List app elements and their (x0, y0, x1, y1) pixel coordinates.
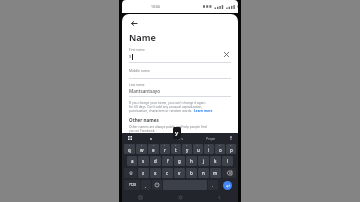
staticText: for 60 days. Don't add any unusual capit… (129, 105, 203, 109)
staticText: Name (129, 31, 156, 43)
staticText: 10:04 (151, 4, 160, 9)
staticText: r (164, 147, 166, 153)
staticText: o (219, 147, 222, 153)
staticText: First name (129, 48, 145, 52)
button[interactable]: Ps (166, 133, 196, 143)
staticText: b (190, 170, 193, 176)
button[interactable]: Last name (129, 83, 231, 97)
staticText: Mantsantsayo (129, 88, 161, 94)
button[interactable]: 3 (148, 144, 159, 154)
staticText: Prqm (206, 136, 216, 141)
staticText: Learn more (194, 109, 213, 113)
button[interactable]: Learn more (194, 109, 213, 113)
button[interactable]: g (174, 156, 185, 166)
staticText: punctuation, characters or random words. (129, 109, 194, 113)
button[interactable]: Back (129, 18, 139, 28)
staticText: e (152, 147, 155, 153)
staticText: 4 (164, 144, 166, 147)
staticText: v (178, 170, 181, 176)
staticText: k (214, 158, 217, 164)
staticText: Ps (179, 136, 183, 141)
staticText: z (142, 170, 145, 176)
staticText: q (128, 147, 131, 153)
button[interactable]: n (198, 168, 209, 178)
button[interactable]: m (210, 168, 221, 178)
staticText: Middle name (129, 68, 150, 73)
staticText: n (202, 170, 205, 176)
button[interactable]: v (174, 168, 185, 178)
staticText: 7 (197, 144, 199, 147)
staticText: y (186, 147, 189, 153)
staticText: s (142, 158, 145, 164)
button[interactable]: z (138, 168, 149, 178)
button[interactable]: 6 (182, 144, 192, 154)
button[interactable]: Emoji (152, 180, 162, 190)
button[interactable]: , (141, 180, 151, 190)
button[interactable]: Middle name (129, 68, 231, 79)
button[interactable]: Clipboard (124, 133, 136, 143)
staticText: m (213, 170, 218, 176)
staticText: , (145, 183, 147, 188)
button[interactable]: 4 (160, 144, 170, 154)
button[interactable]: b (186, 168, 197, 178)
staticText: p (230, 147, 233, 153)
button[interactable]: Home (176, 193, 185, 202)
staticText: f (167, 158, 169, 164)
button[interactable]: d (150, 156, 161, 166)
button[interactable]: a (127, 156, 137, 166)
button[interactable]: Voice input (226, 133, 236, 143)
button[interactable]: s (136, 133, 166, 143)
button[interactable]: 9 (215, 144, 225, 154)
staticText: t (175, 147, 177, 153)
button[interactable]: l (222, 156, 233, 166)
staticText: a (131, 158, 134, 164)
staticText: w (140, 147, 144, 153)
staticText: 2 (141, 144, 143, 147)
button[interactable]: s (138, 156, 149, 166)
button[interactable]: x (150, 168, 161, 178)
staticText: 8 (208, 144, 210, 147)
staticText: you on Facebook. (129, 129, 156, 133)
button[interactable]: c (162, 168, 173, 178)
staticText: . (212, 183, 214, 188)
button[interactable]: Enter (223, 181, 232, 190)
button[interactable]: First name (129, 48, 231, 60)
button[interactable]: j (198, 156, 209, 166)
staticText: s (150, 136, 152, 141)
staticText: Last name (129, 83, 145, 87)
staticText: s (129, 53, 132, 60)
staticText: u (197, 147, 200, 153)
staticText: 5 (175, 144, 177, 147)
staticText: i (208, 147, 210, 153)
button[interactable]: Backspace (222, 168, 236, 178)
staticText: Other names are always public and help p… (129, 125, 207, 129)
staticText: l (227, 158, 229, 164)
staticText: Other names (129, 117, 159, 123)
button[interactable]: 0 (226, 144, 236, 154)
button[interactable]: Clear first name (222, 50, 231, 59)
staticText: h (190, 158, 193, 164)
staticText: x (154, 170, 157, 176)
staticText: y (175, 129, 179, 137)
button[interactable]: ?123 (124, 180, 140, 190)
staticText: 3 (153, 144, 155, 147)
button[interactable]: . (208, 180, 218, 190)
button[interactable]: 8 (204, 144, 214, 154)
button[interactable]: k (210, 156, 221, 166)
button[interactable]: f (162, 156, 173, 166)
button[interactable]: 1 (124, 144, 135, 154)
staticText: j (203, 158, 205, 164)
button[interactable]: Shift (124, 168, 137, 178)
button[interactable]: h (186, 156, 197, 166)
button[interactable]: Recent apps (136, 193, 145, 202)
staticText: d (154, 158, 157, 164)
button[interactable]: Back (215, 193, 224, 202)
button[interactable]: 2 (136, 144, 147, 154)
staticText: 6 (186, 144, 188, 147)
staticText: ?123 (129, 183, 136, 187)
button[interactable]: 5 (171, 144, 181, 154)
button[interactable]: 7 (193, 144, 203, 154)
staticText: 9 (219, 144, 221, 147)
button[interactable]: Prqm (196, 133, 226, 143)
